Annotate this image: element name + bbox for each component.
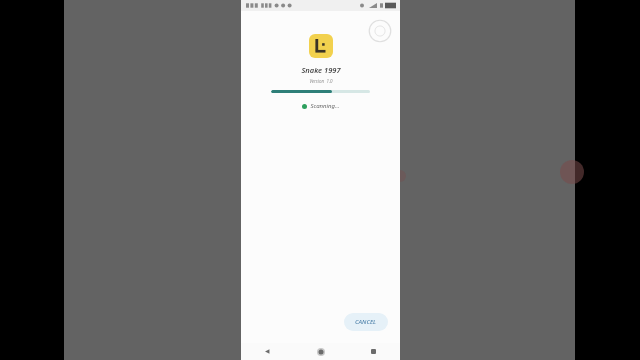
- button[interactable]: CANCEL: [344, 313, 388, 331]
- button[interactable]: Home: [294, 343, 347, 360]
- button[interactable]: Recent apps: [347, 343, 400, 360]
- staticText: Version 1.0: [309, 78, 333, 84]
- staticText: Scanning...: [310, 102, 340, 110]
- button[interactable]: Back: [241, 343, 294, 360]
- staticText: CANCEL: [355, 318, 377, 326]
- staticText: Snake 1997: [301, 65, 341, 75]
